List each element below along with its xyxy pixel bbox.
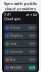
staticText: Link (31, 59, 34, 61)
staticText: Cloud sync (4, 17, 20, 21)
staticText: iCloud (10, 26, 20, 29)
button[interactable]: OneDrive (4, 48, 37, 55)
button[interactable]: Dropbox (4, 32, 37, 39)
button[interactable]: WebDAV (4, 64, 37, 71)
button[interactable]: Box (4, 56, 37, 63)
staticText: cloud providers (5, 6, 36, 11)
staticText: Add (31, 67, 34, 69)
staticText: OneDrive (10, 50, 23, 53)
staticText: Sync (30, 27, 34, 29)
staticText: 9:41 (4, 13, 11, 16)
staticText: Box (10, 58, 15, 61)
button[interactable]: Drive (4, 40, 37, 47)
staticText: WebDAV (10, 66, 22, 69)
staticText: Drive (10, 42, 17, 45)
staticText: Sync with public (4, 1, 37, 6)
staticText: Link (31, 35, 34, 37)
button[interactable]: iCloud (4, 24, 37, 31)
staticText: Link (31, 43, 34, 45)
staticText: Dropbox (10, 34, 22, 37)
staticText: Link (31, 51, 34, 53)
